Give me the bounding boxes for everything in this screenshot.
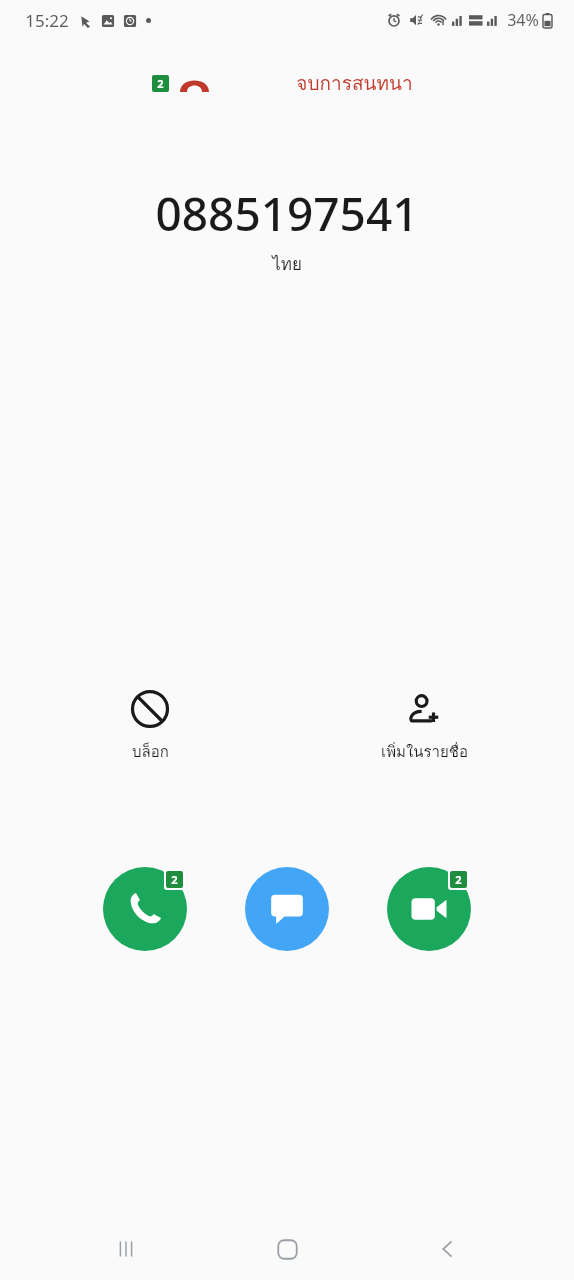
button[interactable]: Message	[245, 867, 329, 951]
button[interactable]: Home	[252, 1218, 322, 1280]
button[interactable]: Add to contacts	[358, 686, 490, 768]
staticText: 2	[171, 872, 178, 887]
staticText: 2	[157, 76, 164, 91]
staticText: เพิ่มในรายชื่อ	[381, 740, 468, 764]
button[interactable]: Block	[84, 686, 216, 768]
button[interactable]: Recents	[91, 1218, 161, 1280]
staticText: ไทย	[272, 250, 302, 277]
staticText: 2	[455, 872, 462, 887]
staticText: 34%	[507, 9, 539, 31]
button[interactable]: Call	[103, 867, 187, 951]
button[interactable]: Video call	[387, 867, 471, 951]
staticText: 0885197541	[155, 182, 419, 245]
staticText: 15:22	[25, 9, 69, 32]
staticText: จบการสนทนา	[296, 68, 413, 98]
button[interactable]: Back	[413, 1218, 483, 1280]
staticText: บล็อก	[132, 740, 169, 764]
